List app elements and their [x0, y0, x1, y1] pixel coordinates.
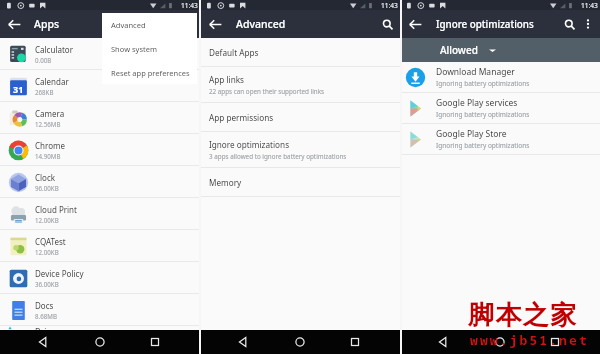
staticText: Advanced [111, 20, 146, 30]
staticText: Camera [35, 108, 65, 119]
staticText: 268KB [35, 88, 54, 96]
staticText: Download Manager [436, 66, 515, 78]
button[interactable]: More options [579, 15, 597, 33]
staticText: 11:43 [181, 1, 198, 10]
button[interactable]: Recents [340, 330, 370, 354]
button[interactable]: Reset app preferences [102, 61, 197, 84]
button[interactable]: Google Play services [400, 93, 600, 124]
button[interactable]: Device Policy [0, 262, 200, 294]
staticText: 22 apps can open their supported links [209, 87, 325, 96]
staticText: Drive [35, 326, 55, 330]
staticText: Calendar [35, 76, 69, 87]
staticText: 脚本之家 [468, 299, 578, 332]
button[interactable]: App links [200, 67, 400, 103]
button[interactable]: Camera [0, 102, 200, 134]
staticText: Show system [111, 44, 157, 54]
staticText: 14.90MB [35, 152, 61, 160]
button[interactable]: 31 [0, 70, 200, 102]
button[interactable]: Docs [0, 294, 200, 326]
button[interactable]: Recents [140, 330, 170, 354]
staticText: 8.68MB [35, 312, 57, 320]
staticText: Chrome [35, 140, 65, 151]
staticText: 96.00KB [35, 184, 59, 192]
button[interactable]: Ignore optimizations [200, 132, 400, 168]
staticText: 3 apps allowed to ignore battery optimiz… [209, 152, 347, 161]
button[interactable]: Back [401, 10, 429, 38]
staticText: Ignoring battery optimizations [436, 141, 530, 150]
staticText: Google Play services [436, 97, 518, 109]
staticText: Apps [34, 17, 60, 31]
staticText: Ignoring battery optimizations [436, 79, 530, 88]
staticText: Google Play Store [436, 128, 507, 140]
staticText: Reset app preferences [111, 68, 190, 78]
staticText: Default Apps [209, 47, 259, 58]
button[interactable]: Back [228, 330, 258, 354]
staticText: Ignore optimizations [436, 18, 534, 31]
staticText: 0.00B [35, 56, 52, 64]
button[interactable]: Back [0, 10, 28, 38]
button[interactable]: Back [201, 10, 229, 38]
staticText: 36.00KB [35, 280, 59, 288]
staticText: Ignoring battery optimizations [436, 110, 530, 119]
button[interactable]: Default Apps [200, 38, 400, 67]
staticText: CQATest [35, 236, 66, 247]
button[interactable]: Chrome [0, 134, 200, 166]
button[interactable]: Calculator [0, 38, 200, 70]
button[interactable]: Back [428, 330, 458, 354]
button[interactable]: App permissions [200, 103, 400, 132]
staticText: Ignore optimizations [209, 139, 290, 150]
staticText: App permissions [209, 112, 274, 123]
staticText: www.jb51.net [470, 331, 589, 349]
staticText: App links [209, 74, 245, 85]
staticText: 12.56MB [35, 120, 61, 128]
staticText: 11:43 [581, 1, 598, 10]
button[interactable]: Download Manager [400, 62, 600, 93]
button[interactable]: Cloud Print [0, 198, 200, 230]
staticText: Cloud Print [35, 204, 77, 215]
button[interactable]: Search [559, 14, 579, 34]
button[interactable]: Search [376, 13, 398, 35]
button[interactable]: Google Play Store [400, 124, 600, 155]
button[interactable]: Back [28, 330, 58, 354]
staticText: 12.00KB [35, 248, 59, 256]
staticText: Memory [209, 177, 242, 188]
staticText: 11:43 [381, 1, 398, 10]
button[interactable]: Show system [102, 37, 197, 61]
staticText: Device Policy [35, 268, 84, 279]
button[interactable]: Drive [0, 326, 200, 330]
button[interactable]: Home [85, 330, 115, 354]
staticText: Advanced [236, 17, 286, 31]
staticText: Calculator [35, 44, 73, 55]
button[interactable]: Memory [200, 168, 400, 197]
button[interactable]: Advanced [102, 13, 197, 37]
staticText: Allowed [440, 43, 478, 57]
button[interactable]: CQATest [0, 230, 200, 262]
staticText: 12.00KB [35, 216, 59, 224]
button[interactable]: Home [485, 330, 515, 354]
staticText: Clock [35, 172, 56, 183]
button[interactable]: Clock [0, 166, 200, 198]
button[interactable]: Allowed [400, 38, 600, 62]
button[interactable]: Recents [540, 330, 570, 354]
staticText: Docs [35, 300, 54, 311]
staticText: 31 [13, 83, 24, 95]
button[interactable]: Home [285, 330, 315, 354]
